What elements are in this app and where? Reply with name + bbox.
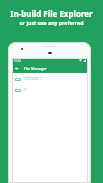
staticText: In-build File Explorer xyxy=(0,8,103,19)
staticText: or just use any preferred xyxy=(0,19,103,26)
staticText: File Manager xyxy=(24,66,47,71)
button[interactable]: Back xyxy=(14,65,20,71)
staticText: 10:30 xyxy=(14,59,21,63)
staticText: 12/13/2021 xyxy=(24,77,41,81)
staticText: 3 xyxy=(24,88,26,92)
button[interactable]: 3 xyxy=(12,84,88,95)
button[interactable]: 12/13/2021 xyxy=(12,73,88,84)
